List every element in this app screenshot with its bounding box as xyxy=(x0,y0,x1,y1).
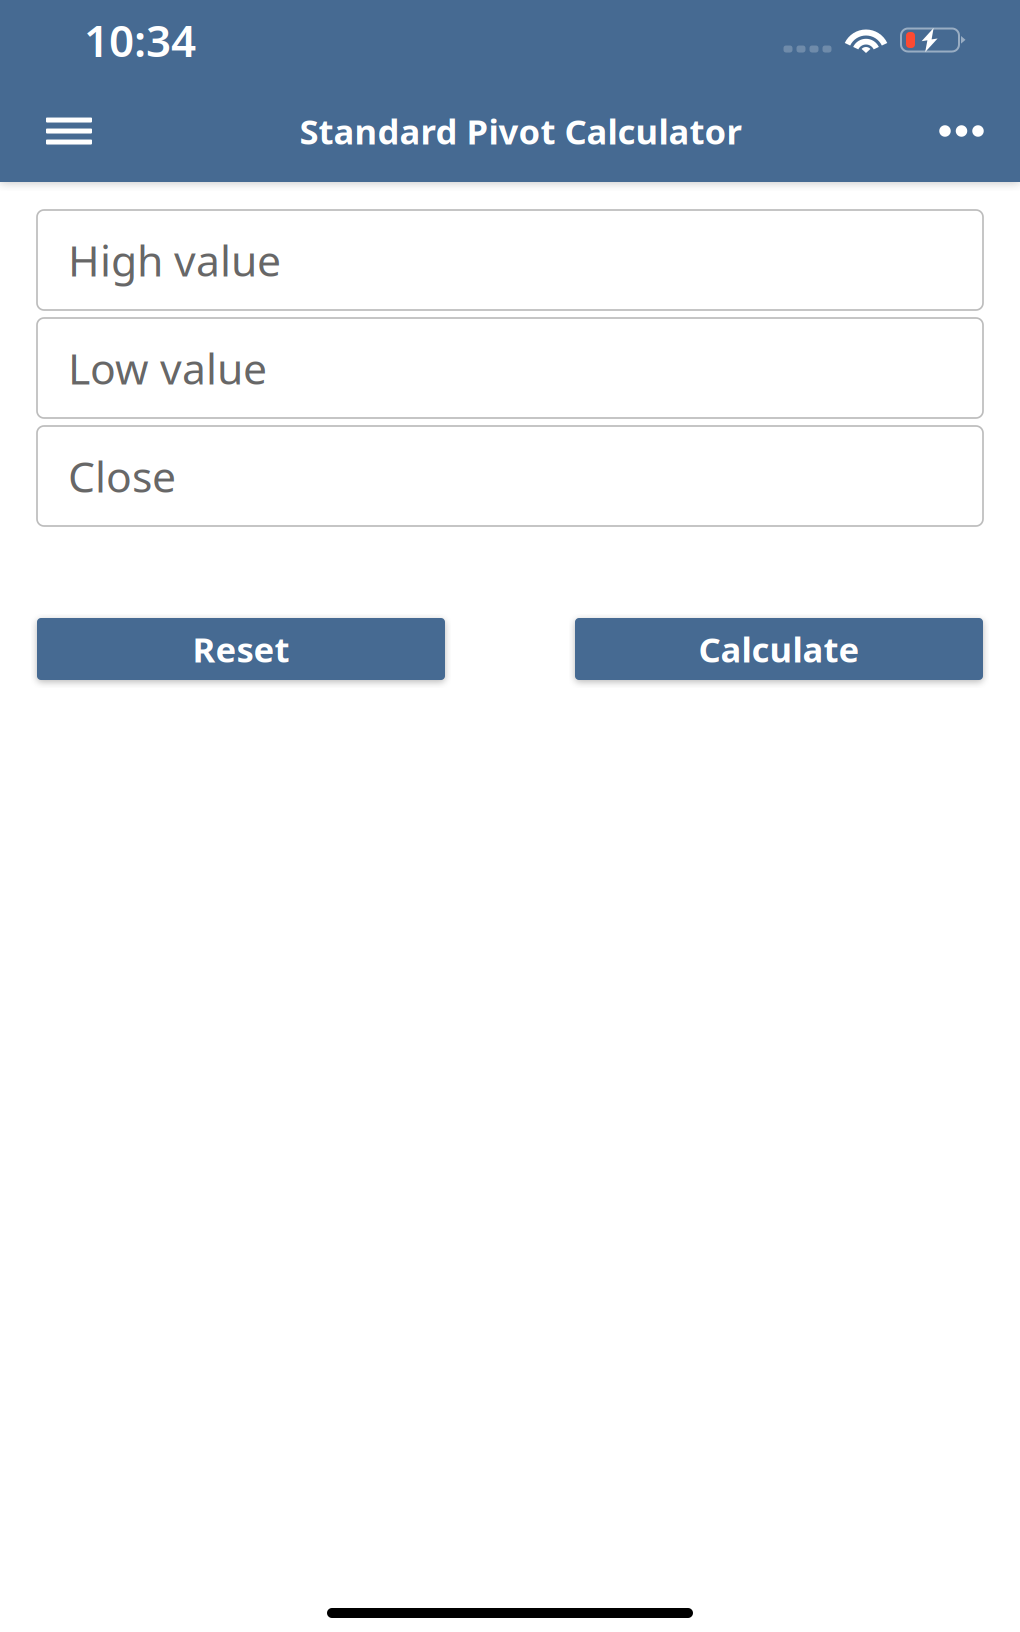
staticText: Close xyxy=(68,448,176,504)
staticText: Calculate xyxy=(698,626,859,672)
staticText: 10:34 xyxy=(84,11,196,69)
staticText: Reset xyxy=(192,626,289,672)
staticText: Standard Pivot Calculator xyxy=(299,108,741,154)
button[interactable]: High value xyxy=(37,210,983,310)
staticText: Low value xyxy=(68,340,267,396)
button[interactable]: Reset xyxy=(37,618,445,680)
staticText: High value xyxy=(68,232,281,288)
button[interactable]: Calculate xyxy=(575,618,983,680)
button[interactable]: More options xyxy=(925,95,998,166)
button[interactable]: Close xyxy=(37,426,983,526)
button[interactable]: Low value xyxy=(37,318,983,418)
button[interactable]: Menu xyxy=(22,95,116,166)
